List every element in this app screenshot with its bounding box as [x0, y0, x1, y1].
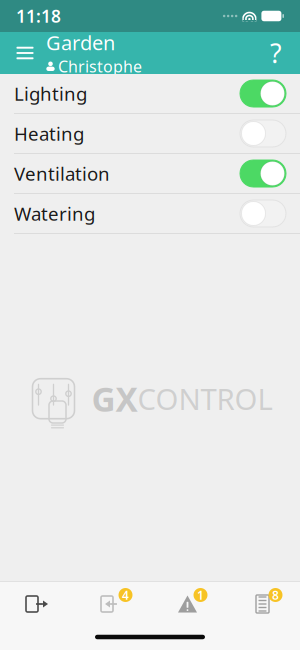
button[interactable]: Log — [225, 582, 300, 626]
staticText: ? — [270, 35, 282, 71]
staticText: 8 — [272, 587, 279, 603]
staticText: Ventilation — [14, 161, 110, 186]
button[interactable]: Logout — [0, 582, 75, 626]
button[interactable]: Watering — [0, 194, 300, 233]
staticText: 1 — [197, 587, 204, 603]
button[interactable]: Menu — [4, 32, 46, 74]
button[interactable]: Heating — [0, 114, 300, 153]
staticText: 4 — [122, 587, 129, 603]
staticText: Lighting — [14, 81, 87, 106]
button[interactable]: Ventilation — [0, 154, 300, 193]
staticText: GX — [91, 377, 137, 421]
staticText: Heating — [14, 121, 84, 146]
staticText: CONTROL — [137, 379, 272, 418]
staticText: 11:18 — [16, 4, 61, 27]
button[interactable]: Incoming — [75, 582, 150, 626]
button[interactable]: Alarms — [150, 582, 225, 626]
button[interactable]: Help — [256, 32, 296, 74]
button[interactable]: Lighting — [0, 74, 300, 113]
staticText: Watering — [14, 201, 95, 226]
staticText: Christophe — [58, 56, 142, 77]
staticText: Garden — [46, 29, 115, 56]
